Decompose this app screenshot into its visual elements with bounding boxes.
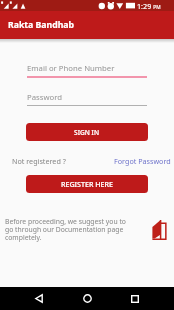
- staticText: 1:29: [137, 1, 152, 11]
- staticText: REGISTER HERE: [61, 179, 113, 189]
- staticText: Before proceeding, we suggest you to go …: [5, 217, 131, 242]
- staticText: Password: [27, 92, 63, 103]
- staticText: Rakta Bandhab: [8, 19, 74, 31]
- staticText: Not registered ?: [12, 156, 66, 166]
- staticText: Forgot Password: [114, 156, 171, 166]
- button[interactable]: Forgot Password: [114, 156, 171, 166]
- button[interactable]: SIGN IN: [26, 123, 148, 141]
- button[interactable]: Back: [0, 287, 78, 310]
- staticText: Email or Phone Number: [27, 63, 115, 74]
- button[interactable]: Documentation: [152, 220, 167, 240]
- staticText: SIGN IN: [74, 128, 100, 137]
- button[interactable]: Recent apps: [96, 287, 174, 310]
- button[interactable]: Home: [78, 287, 96, 310]
- button[interactable]: REGISTER HERE: [26, 175, 148, 193]
- staticText: PM: [152, 4, 161, 11]
